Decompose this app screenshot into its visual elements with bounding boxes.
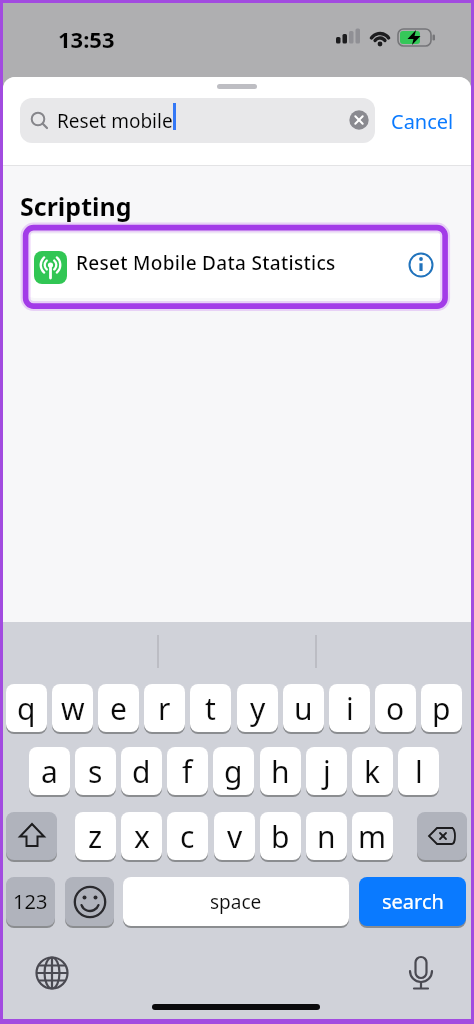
button[interactable]: z	[75, 812, 116, 860]
staticText: Reset Mobile Data Statistics	[76, 250, 336, 276]
staticText: s	[88, 751, 103, 792]
button[interactable]	[65, 877, 114, 926]
button[interactable]: v	[214, 812, 255, 860]
staticText: j	[323, 751, 331, 792]
staticText: e	[110, 688, 127, 729]
button[interactable]: c	[167, 812, 208, 860]
staticText: space	[210, 889, 262, 915]
button[interactable]: n	[306, 812, 347, 860]
staticText: b	[271, 816, 290, 857]
staticText: g	[224, 751, 243, 792]
button[interactable]: d	[121, 747, 162, 795]
button[interactable]: h	[260, 747, 301, 795]
button[interactable]: Cancel	[391, 108, 454, 135]
button[interactable]: p	[421, 684, 462, 732]
staticText: n	[317, 816, 336, 857]
staticText: z	[88, 816, 103, 857]
staticText: 13:53	[58, 24, 115, 54]
button[interactable]: b	[260, 812, 301, 860]
button[interactable]	[6, 812, 57, 860]
staticText: f	[182, 751, 193, 792]
staticText: y	[250, 688, 266, 729]
staticText: l	[415, 751, 423, 792]
staticText: w	[61, 688, 85, 729]
staticText: Reset mobile	[57, 108, 173, 134]
button[interactable]: y	[237, 684, 278, 732]
staticText: u	[294, 688, 313, 729]
button[interactable]: o	[375, 684, 416, 732]
button[interactable]: x	[121, 812, 162, 860]
staticText: m	[358, 816, 387, 857]
button[interactable]: 123	[6, 877, 55, 926]
staticText: p	[432, 688, 451, 729]
button[interactable]: w	[52, 684, 93, 732]
button[interactable]: space	[123, 877, 349, 926]
staticText: h	[271, 751, 290, 792]
button[interactable]: q	[6, 684, 47, 732]
staticText: x	[134, 816, 150, 857]
button[interactable]	[34, 955, 70, 991]
button[interactable]: f	[167, 747, 208, 795]
button[interactable]	[417, 812, 467, 860]
button[interactable]: s	[75, 747, 116, 795]
staticText: r	[158, 688, 171, 729]
button[interactable]: m	[352, 812, 393, 860]
staticText: a	[41, 751, 58, 792]
staticText: k	[364, 751, 381, 792]
button[interactable]: g	[213, 747, 254, 795]
button[interactable]	[406, 955, 436, 997]
button[interactable]: e	[98, 684, 139, 732]
staticText: t	[205, 688, 216, 729]
button[interactable]: l	[398, 747, 439, 795]
button[interactable]: search	[359, 877, 466, 926]
staticText: search	[382, 888, 444, 915]
staticText: q	[17, 688, 36, 729]
staticText: v	[227, 816, 243, 857]
staticText: 123	[13, 888, 48, 915]
staticText: c	[180, 816, 195, 857]
button[interactable]: i	[329, 684, 370, 732]
button[interactable]: Reset mobile	[20, 98, 375, 143]
staticText: Cancel	[391, 108, 454, 135]
staticText: i	[346, 688, 354, 729]
staticText: Scripting	[20, 189, 132, 223]
button[interactable]: k	[352, 747, 393, 795]
button[interactable]: j	[306, 747, 347, 795]
button[interactable]: r	[144, 684, 185, 732]
button[interactable]: a	[29, 747, 70, 795]
button[interactable]: u	[283, 684, 324, 732]
staticText: d	[132, 751, 151, 792]
staticText: o	[386, 688, 405, 729]
button[interactable]: Reset Mobile Data Statistics	[24, 234, 450, 298]
button[interactable]: t	[190, 684, 231, 732]
